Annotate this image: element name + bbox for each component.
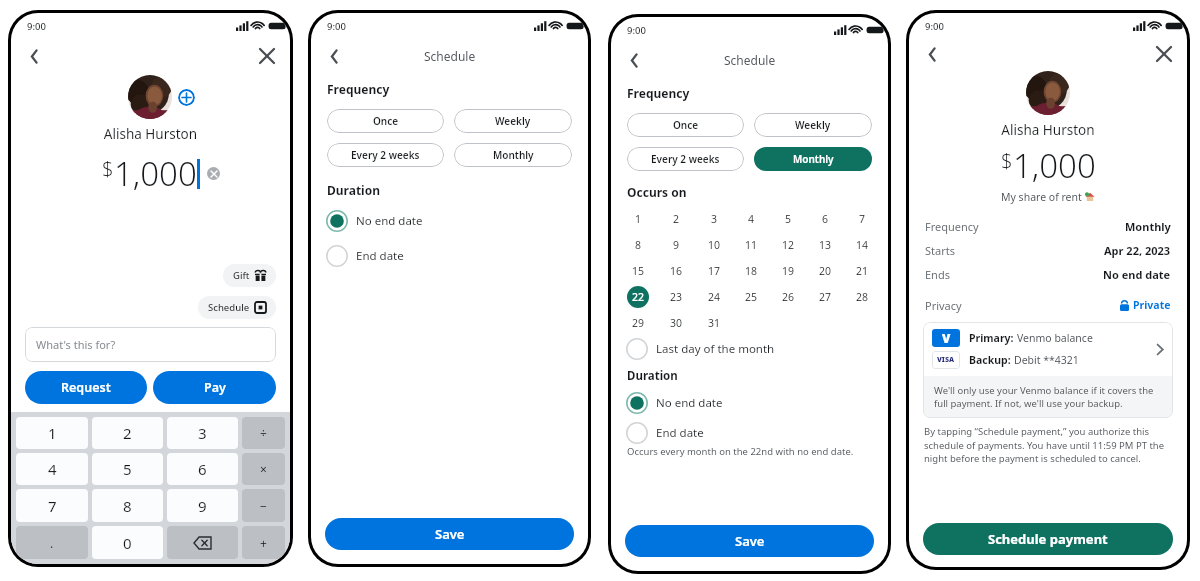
button[interactable]: 7 (851, 208, 873, 230)
button[interactable]: Schedule (198, 296, 276, 319)
button[interactable]: 30 (665, 312, 687, 334)
button[interactable]: 8 (627, 234, 649, 256)
button[interactable]: 19 (777, 260, 799, 282)
button[interactable]: 14 (851, 234, 873, 256)
button[interactable]: Back (919, 41, 945, 67)
button[interactable]: Gift (223, 264, 276, 287)
button[interactable]: Delete (167, 526, 238, 559)
button[interactable]: Privacy (925, 294, 1171, 316)
staticText: Last day of the month (656, 341, 775, 357)
button[interactable]: No end date (326, 210, 588, 232)
button[interactable]: 9 (167, 489, 238, 522)
button[interactable]: 3 (703, 208, 725, 230)
button[interactable]: 2 (92, 417, 163, 449)
button[interactable]: What's this for? (25, 327, 276, 362)
button[interactable]: 23 (665, 286, 687, 308)
button[interactable]: Back (621, 47, 647, 73)
button[interactable]: 25 (740, 286, 762, 308)
button[interactable]: 24 (703, 286, 725, 308)
button[interactable]: Weekly (754, 113, 872, 137)
staticText: Occurs every month on the 22nd with no e… (627, 445, 854, 458)
button[interactable]: Last day of the month (626, 338, 888, 360)
staticText: Weekly (795, 118, 831, 132)
button[interactable]: 8 (92, 489, 163, 522)
staticText: Schedule payment (988, 530, 1108, 548)
button[interactable]: 4 (16, 453, 88, 485)
button[interactable]: 18 (740, 260, 762, 282)
button[interactable]: Every 2 weeks (627, 147, 744, 171)
button[interactable]: 4 (740, 208, 762, 230)
button[interactable]: 15 (627, 260, 649, 282)
button[interactable]: 22 (627, 286, 649, 308)
button[interactable]: V (923, 322, 1173, 418)
button[interactable]: 5 (92, 453, 163, 485)
button[interactable]: Monthly (754, 147, 872, 171)
button[interactable]: 26 (777, 286, 799, 308)
button[interactable]: 6 (814, 208, 836, 230)
button[interactable]: Pay (153, 371, 276, 404)
button[interactable]: End date (626, 422, 888, 444)
button[interactable]: Once (627, 113, 744, 137)
staticText: 9:00 (327, 20, 346, 33)
staticText: 11 (745, 238, 758, 252)
button[interactable]: Add person (178, 89, 195, 106)
button[interactable]: 17 (703, 260, 725, 282)
staticText: 1 (48, 423, 57, 443)
button[interactable]: 12 (777, 234, 799, 256)
button[interactable]: 7 (16, 489, 88, 522)
staticText: 6 (822, 212, 829, 226)
button[interactable]: 27 (814, 286, 836, 308)
button[interactable]: Save (625, 525, 874, 557)
button[interactable]: 3 (167, 417, 238, 449)
button[interactable]: Back (21, 43, 47, 69)
button[interactable]: 10 (703, 234, 725, 256)
staticText: 9 (673, 238, 680, 252)
button[interactable]: ÷ (242, 417, 285, 449)
button[interactable]: Close (254, 43, 280, 69)
staticText: Pay (204, 379, 226, 396)
button[interactable]: 0 (92, 526, 163, 559)
button[interactable]: × (242, 453, 285, 485)
button[interactable]: Clear (207, 167, 220, 180)
staticText: 4 (48, 459, 57, 479)
button[interactable]: 20 (814, 260, 836, 282)
button[interactable]: No end date (626, 392, 888, 414)
button[interactable]: Monthly (454, 143, 572, 167)
button[interactable]: 13 (814, 234, 836, 256)
button[interactable]: Every 2 weeks (327, 143, 444, 167)
button[interactable]: 9 (665, 234, 687, 256)
button[interactable]: 21 (851, 260, 873, 282)
staticText: 9 (198, 496, 207, 516)
button[interactable]: + (242, 526, 285, 559)
button[interactable]: 6 (167, 453, 238, 485)
button[interactable]: 28 (851, 286, 873, 308)
button[interactable]: 5 (777, 208, 799, 230)
staticText: 20 (819, 264, 832, 278)
button[interactable]: 29 (627, 312, 649, 334)
button[interactable]: Back (321, 43, 347, 69)
button[interactable]: Weekly (454, 109, 572, 133)
staticText: 8 (123, 496, 132, 516)
button[interactable]: 1 (16, 417, 88, 449)
button[interactable]: 16 (665, 260, 687, 282)
button[interactable]: − (242, 489, 285, 522)
button[interactable]: 2 (665, 208, 687, 230)
button[interactable]: 11 (740, 234, 762, 256)
staticText: V (942, 330, 951, 346)
staticText: End date (356, 248, 404, 264)
button[interactable]: . (16, 526, 88, 559)
staticText: 2 (123, 423, 132, 443)
staticText: $ (1001, 147, 1013, 174)
staticText: × (260, 461, 267, 477)
button[interactable]: End date (326, 245, 588, 267)
button[interactable]: Schedule payment (923, 523, 1173, 555)
button[interactable]: Request (25, 371, 147, 404)
staticText: 6 (198, 459, 207, 479)
staticText: 18 (745, 264, 758, 278)
button[interactable]: Close (1151, 41, 1177, 67)
button[interactable]: Once (327, 109, 444, 133)
button[interactable]: Save (325, 518, 574, 550)
staticText: 27 (819, 290, 832, 304)
button[interactable]: 1 (627, 208, 649, 230)
button[interactable]: 31 (703, 312, 725, 334)
